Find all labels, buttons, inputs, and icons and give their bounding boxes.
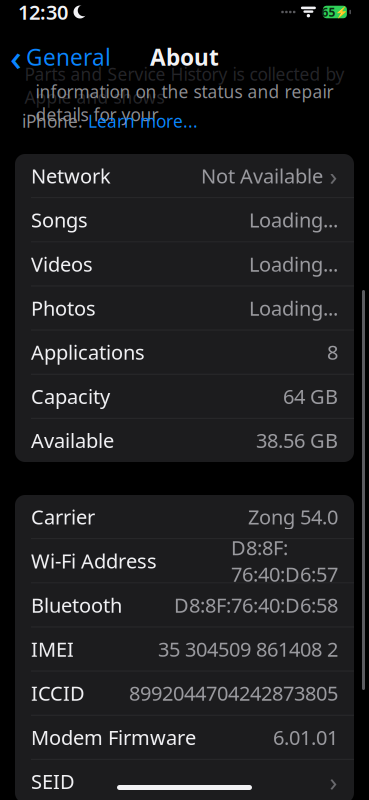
- button[interactable]: Modem Firmware: [15, 715, 354, 759]
- button[interactable]: Songs: [15, 198, 354, 241]
- staticText: 12:30: [18, 0, 68, 25]
- staticText: D8:8F:76:40:D6:57: [231, 534, 338, 587]
- button[interactable]: Capacity: [15, 374, 354, 418]
- staticText: Capacity: [31, 383, 110, 409]
- staticText: IMEI: [31, 636, 74, 662]
- button[interactable]: Learn more...: [88, 109, 198, 132]
- staticText: Available: [31, 427, 114, 454]
- staticText: Learn more...: [88, 109, 198, 132]
- staticText: ›: [329, 764, 337, 798]
- staticText: 8992044704242873805: [129, 680, 338, 706]
- staticText: Parts and Service History is collected b…: [24, 62, 344, 108]
- staticText: Applications: [31, 339, 145, 365]
- staticText: 6.01.01: [273, 724, 338, 750]
- staticText: 8: [327, 339, 338, 365]
- button[interactable]: Available: [15, 419, 354, 462]
- staticText: Songs: [31, 206, 88, 233]
- staticText: ‹: [10, 33, 22, 81]
- staticText: information on the status and repair det…: [35, 80, 333, 126]
- button[interactable]: ICCID: [15, 671, 354, 715]
- staticText: Bluetooth: [31, 592, 122, 618]
- staticText: Loading...: [249, 251, 338, 277]
- staticText: iPhone.: [22, 109, 88, 132]
- staticText: Network: [31, 162, 111, 189]
- staticText: 65: [321, 4, 335, 20]
- staticText: ICCID: [31, 680, 85, 706]
- staticText: 35 304509 861408 2: [158, 636, 338, 662]
- staticText: SEID: [31, 768, 75, 795]
- staticText: Photos: [31, 295, 96, 321]
- button[interactable]: Applications: [15, 330, 354, 374]
- staticText: Carrier: [31, 503, 95, 530]
- button[interactable]: IMEI: [15, 627, 354, 671]
- staticText: Modem Firmware: [31, 724, 196, 750]
- staticText: ›: [329, 159, 337, 192]
- button[interactable]: Wi-Fi Address: [15, 539, 354, 582]
- staticText: ⚡: [335, 6, 348, 18]
- staticText: About: [150, 42, 219, 72]
- button[interactable]: Videos: [15, 242, 354, 286]
- staticText: D8:8F:76:40:D6:58: [174, 592, 338, 618]
- button[interactable]: Network: [15, 154, 354, 197]
- staticText: 38.56 GB: [256, 427, 338, 454]
- staticText: General: [26, 42, 111, 72]
- staticText: Not Available: [201, 162, 323, 189]
- staticText: Videos: [31, 251, 93, 277]
- button[interactable]: SEID: [15, 760, 354, 800]
- button[interactable]: Carrier: [15, 495, 354, 538]
- staticText: 64 GB: [283, 383, 338, 409]
- button[interactable]: ‹: [0, 41, 121, 73]
- staticText: Loading...: [249, 206, 338, 233]
- staticText: Zong 54.0: [248, 503, 338, 530]
- button[interactable]: Bluetooth: [15, 583, 354, 627]
- button[interactable]: Photos: [15, 286, 354, 330]
- staticText: Wi-Fi Address: [31, 547, 157, 574]
- staticText: Loading...: [249, 295, 338, 321]
